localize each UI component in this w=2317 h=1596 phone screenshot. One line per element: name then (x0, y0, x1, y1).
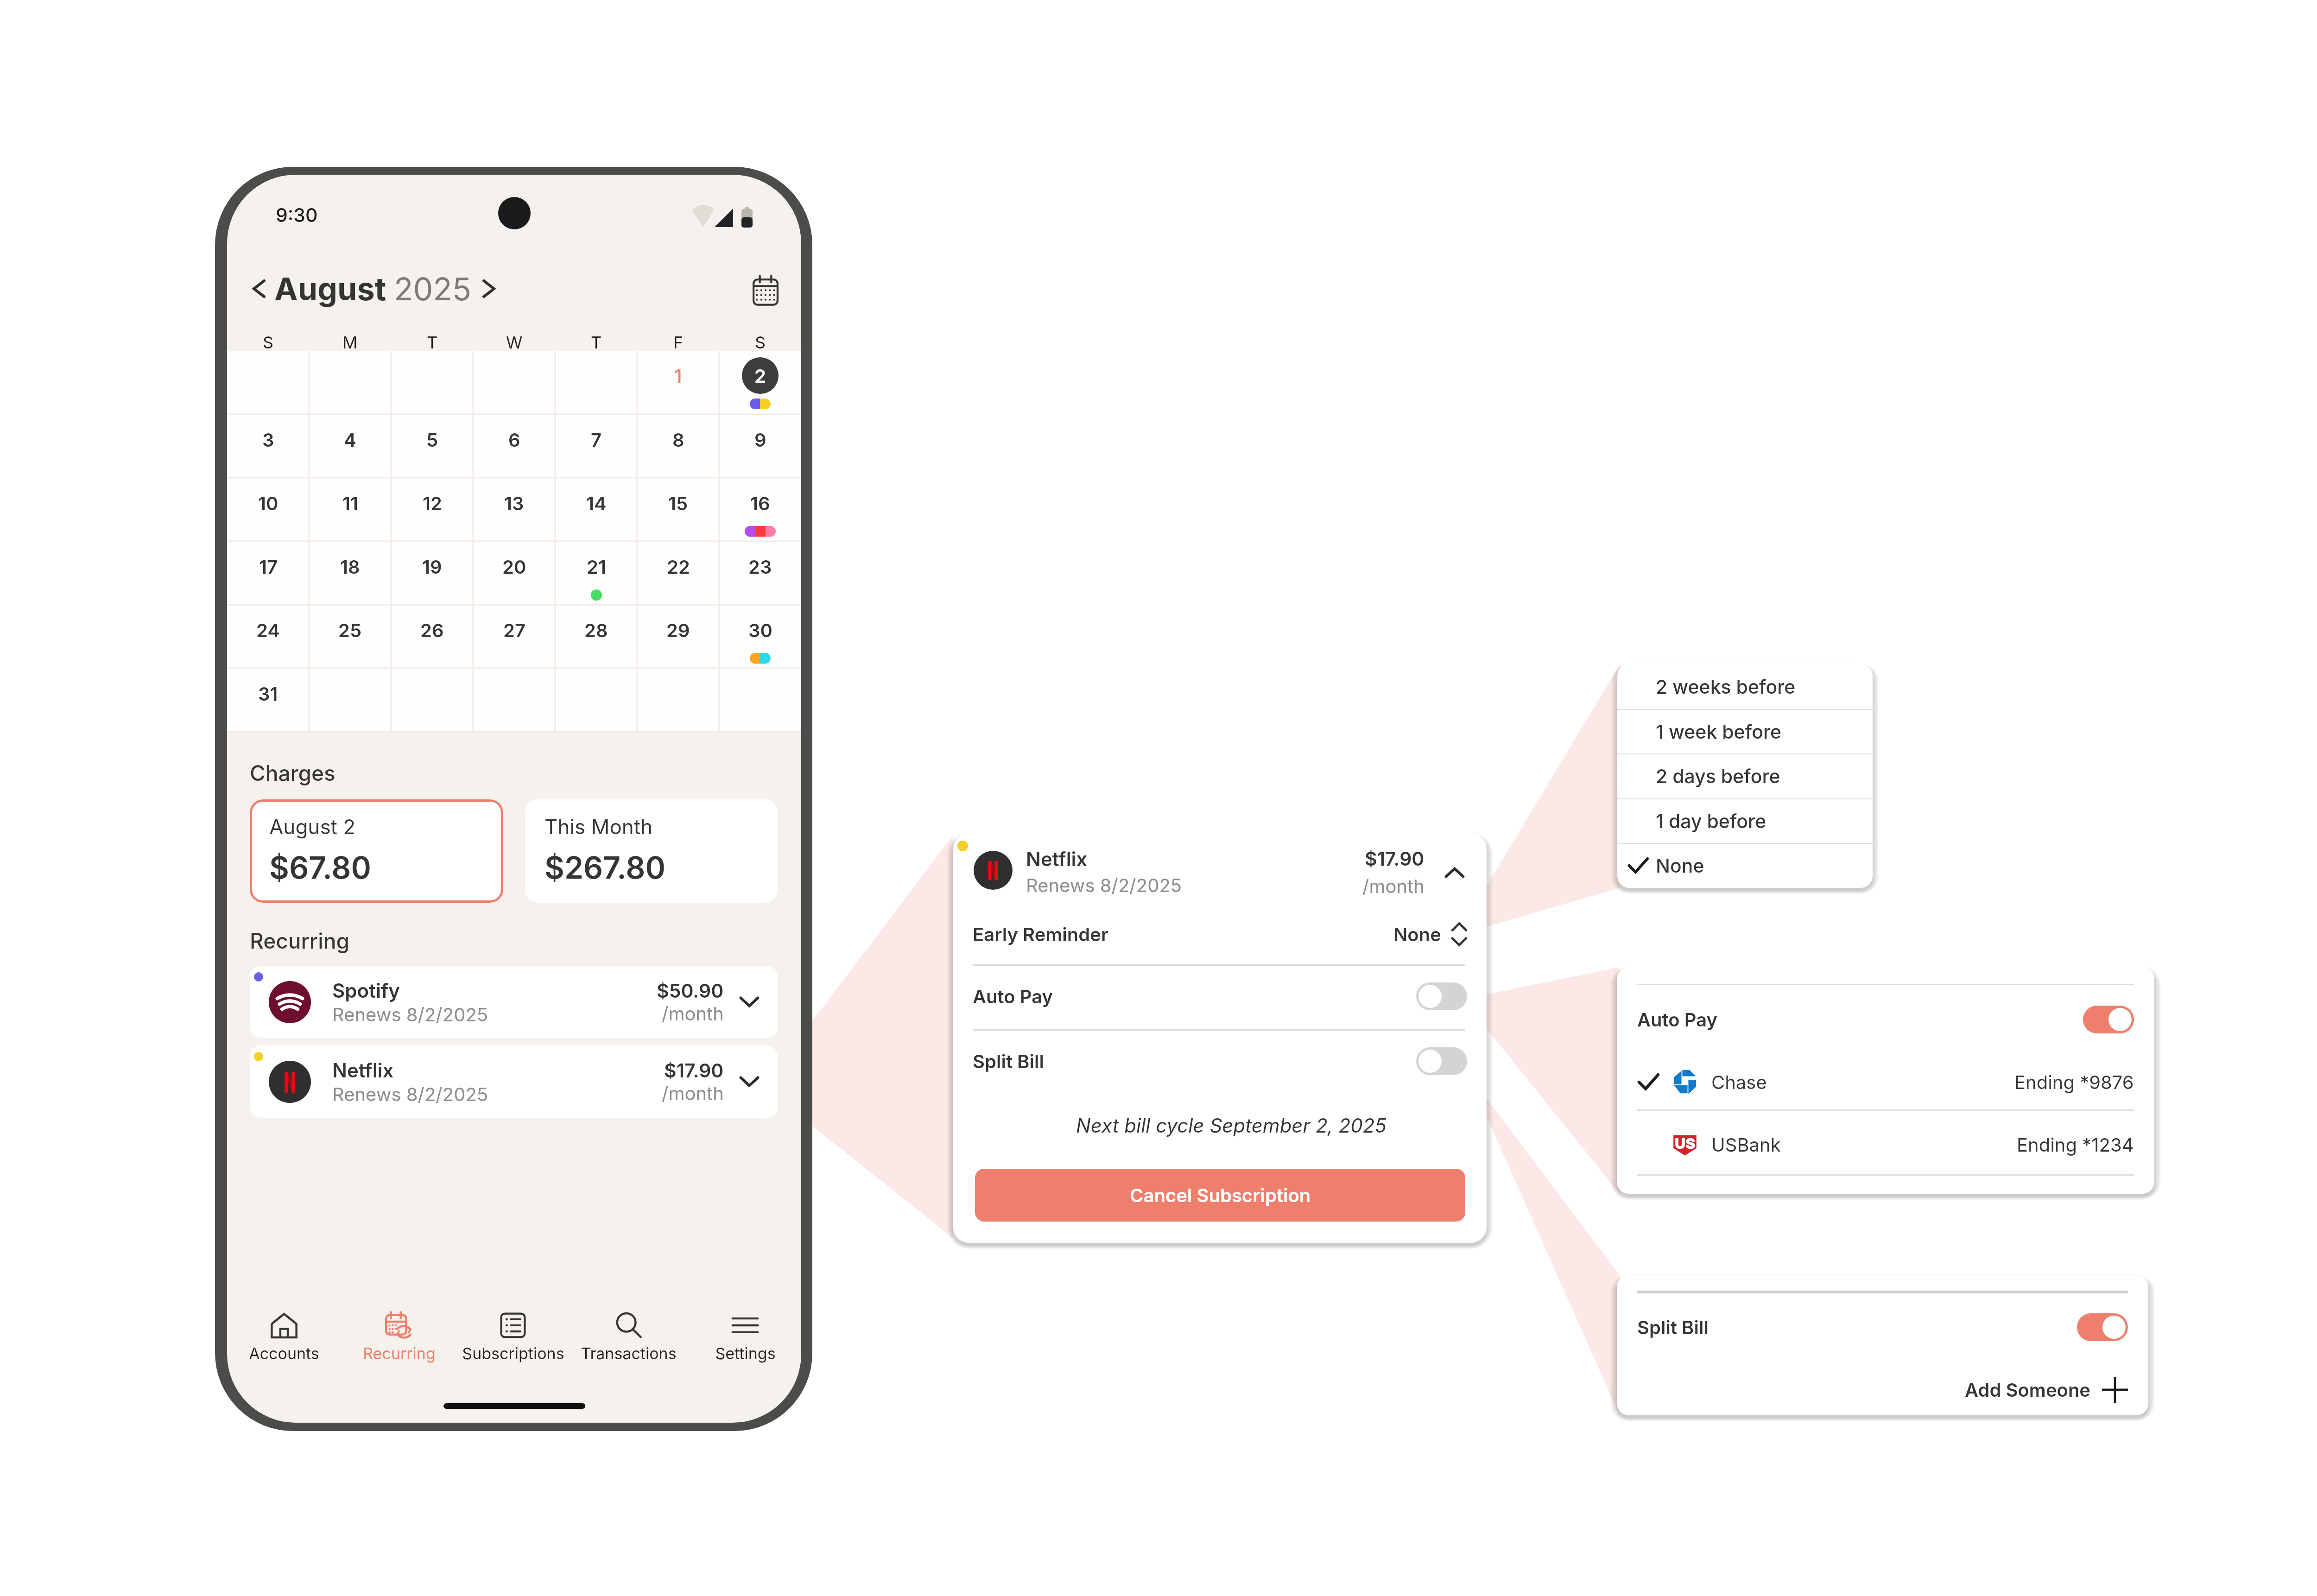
button[interactable]: Toggle on (2077, 1313, 2128, 1341)
button[interactable]: 14 (555, 478, 637, 542)
button[interactable]: Spotify (250, 966, 778, 1038)
button[interactable]: Early Reminder (973, 908, 1467, 961)
button[interactable]: 11 (309, 478, 391, 542)
button[interactable]: Toggle off (1416, 1047, 1467, 1075)
button[interactable]: 5 (391, 415, 473, 478)
button[interactable] (473, 351, 555, 415)
staticText: 11 (342, 492, 358, 514)
button[interactable]: Cancel Subscription (975, 1169, 1465, 1222)
button[interactable]: 28 (555, 605, 637, 669)
button[interactable]: Expand (736, 989, 763, 1014)
button[interactable]: None (1617, 843, 1873, 888)
button[interactable]: Chase (1637, 1055, 2134, 1109)
staticText: Netflix (332, 1058, 394, 1082)
button[interactable] (719, 669, 801, 732)
button[interactable]: Subscriptions (450, 1306, 576, 1366)
button[interactable]: 9 (719, 415, 801, 478)
staticText: Recurring (363, 1344, 436, 1363)
button[interactable]: 24 (227, 605, 309, 669)
button[interactable]: 12 (391, 478, 473, 542)
staticText: 13 (504, 492, 524, 514)
staticText: $17.90 (664, 1059, 724, 1082)
button[interactable] (391, 669, 473, 732)
button[interactable] (309, 669, 391, 732)
button[interactable] (555, 669, 637, 732)
button[interactable]: Split Bill (973, 1035, 1467, 1088)
button[interactable]: 18 (309, 542, 391, 605)
button[interactable]: 19 (391, 542, 473, 605)
staticText: 1 (674, 365, 682, 387)
button[interactable]: Collapse details (1441, 860, 1468, 885)
button[interactable]: 8 (637, 415, 719, 478)
button[interactable]: 2 days before (1617, 754, 1873, 798)
button[interactable]: Auto Pay (973, 970, 1467, 1023)
button[interactable]: Auto Pay (1637, 994, 2134, 1045)
button[interactable]: 2 (719, 351, 801, 415)
button[interactable]: 16 (719, 478, 801, 542)
button[interactable]: Next month (477, 271, 500, 307)
button[interactable]: 29 (637, 605, 719, 669)
button[interactable]: Previous month (247, 271, 271, 307)
staticText: Renews 8/2/2025 (332, 1003, 488, 1026)
button[interactable]: 2 weeks before (1617, 664, 1873, 709)
button[interactable]: 31 (227, 669, 309, 732)
staticText: 4 (344, 429, 356, 451)
button[interactable]: 4 (309, 415, 391, 478)
staticText: USBank (1711, 1134, 1781, 1156)
button[interactable]: 1 day before (1617, 798, 1873, 843)
button[interactable] (555, 351, 637, 415)
button[interactable]: US (1637, 1118, 2134, 1172)
button[interactable]: Open calendar picker (753, 275, 779, 306)
staticText: 27 (503, 619, 525, 641)
button[interactable]: Expand (736, 1069, 763, 1094)
button[interactable]: Split Bill (1637, 1302, 2128, 1353)
button[interactable] (473, 669, 555, 732)
button[interactable]: 23 (719, 542, 801, 605)
button[interactable]: 15 (637, 478, 719, 542)
staticText: 12 (423, 492, 442, 514)
button[interactable]: Toggle off (1416, 982, 1467, 1010)
staticText: 2025 (394, 270, 472, 308)
button[interactable]: 22 (637, 542, 719, 605)
button[interactable]: Toggle on (2083, 1006, 2134, 1033)
button[interactable]: Transactions (566, 1306, 691, 1366)
button[interactable]: This Month (525, 799, 778, 903)
button[interactable]: Settings (683, 1306, 801, 1366)
button[interactable]: 3 (227, 415, 309, 478)
button[interactable]: 1 week before (1617, 709, 1873, 754)
staticText: Renews 8/2/2025 (1026, 874, 1182, 896)
staticText: Accounts (249, 1344, 319, 1363)
button[interactable] (391, 351, 473, 415)
staticText: 1 week before (1656, 720, 1782, 743)
button[interactable]: Netflix (250, 1045, 778, 1118)
staticText: Ending *9876 (2014, 1071, 2134, 1093)
button[interactable]: Accounts (227, 1306, 347, 1366)
button[interactable]: Recurring (336, 1306, 462, 1366)
button[interactable]: 7 (555, 415, 637, 478)
button[interactable]: 10 (227, 478, 309, 542)
button[interactable]: 21 (555, 542, 637, 605)
staticText: 26 (420, 619, 444, 641)
button[interactable]: Add Someone (1637, 1364, 2128, 1415)
staticText: 20 (502, 556, 526, 578)
button[interactable] (227, 351, 309, 415)
button[interactable]: 6 (473, 415, 555, 478)
staticText: T (427, 332, 438, 353)
staticText: None (1393, 923, 1441, 945)
button[interactable]: 20 (473, 542, 555, 605)
button[interactable]: 1 (637, 351, 719, 415)
button[interactable] (309, 351, 391, 415)
button[interactable]: August 2 (250, 799, 503, 903)
button[interactable]: 25 (309, 605, 391, 669)
staticText: S (263, 332, 274, 353)
staticText: 5 (426, 429, 438, 451)
button[interactable]: 17 (227, 542, 309, 605)
button[interactable]: 27 (473, 605, 555, 669)
staticText: 30 (748, 619, 772, 641)
staticText: Settings (715, 1344, 776, 1363)
button[interactable]: 30 (719, 605, 801, 669)
button[interactable] (637, 669, 719, 732)
staticText: 6 (508, 429, 520, 451)
button[interactable]: 13 (473, 478, 555, 542)
button[interactable]: 26 (391, 605, 473, 669)
